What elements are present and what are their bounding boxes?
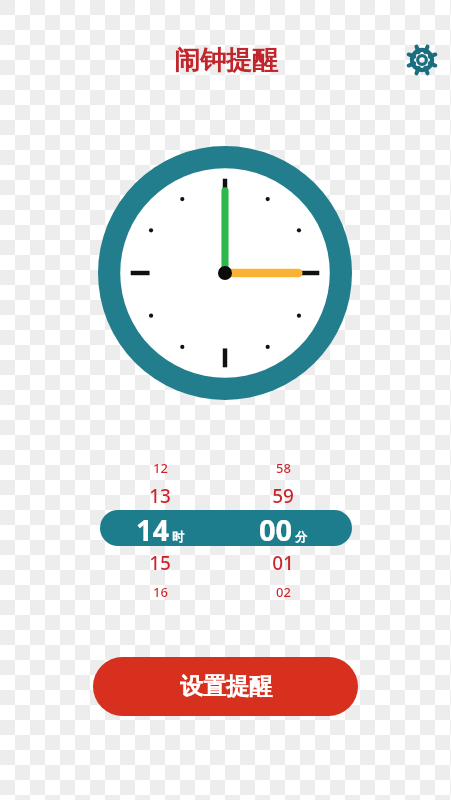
staticText: 12 [153,459,168,477]
staticText: 14 [136,510,170,546]
button[interactable]: 02 [223,580,343,604]
button[interactable]: 16 [100,580,220,604]
button[interactable] [100,510,352,546]
staticText: 59 [272,483,294,509]
button[interactable]: 12 [100,456,220,480]
button[interactable]: 00 [223,510,343,546]
staticText: 16 [153,583,168,601]
staticText: 00 [259,510,293,546]
staticText: 13 [149,483,171,509]
staticText: 分 [295,529,307,544]
staticText: 时 [172,529,184,544]
button[interactable]: 13 [100,482,220,510]
staticText: 设置提醒 [180,672,272,701]
button[interactable]: 14 [100,510,220,546]
button[interactable]: 01 [223,549,343,577]
button[interactable]: Settings [402,40,442,80]
staticText: 58 [276,459,291,477]
staticText: 02 [276,583,291,601]
button[interactable]: 59 [223,482,343,510]
button[interactable]: 设置提醒 [93,657,358,716]
button[interactable]: 58 [223,456,343,480]
staticText: 闹钟提醒 [174,44,278,77]
staticText: 15 [149,550,171,576]
button[interactable]: 15 [100,549,220,577]
staticText: 01 [272,550,294,576]
